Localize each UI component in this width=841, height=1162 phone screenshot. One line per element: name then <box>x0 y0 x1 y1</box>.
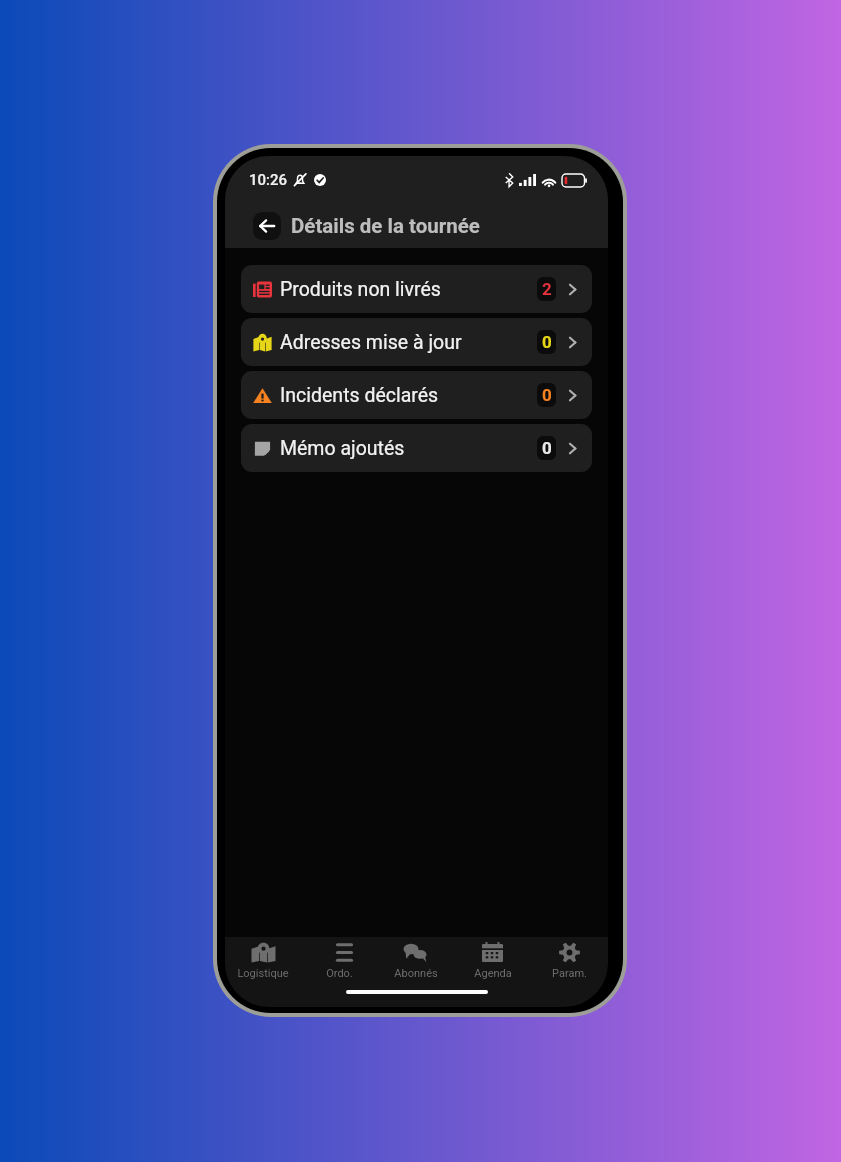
button[interactable]: Agenda <box>454 937 531 984</box>
staticText: 2 <box>542 279 552 299</box>
button[interactable]: Mémo ajoutés <box>241 424 592 472</box>
button[interactable]: Incidents déclarés <box>241 371 592 419</box>
staticText: Abonnés <box>394 967 438 980</box>
button[interactable]: Param. <box>531 937 608 984</box>
staticText: Adresses mise à jour <box>280 331 462 354</box>
staticText: Mémo ajoutés <box>280 437 405 460</box>
staticText: Param. <box>552 967 587 980</box>
staticText: Incidents déclarés <box>280 384 439 407</box>
button[interactable]: Adresses mise à jour <box>241 318 592 366</box>
button[interactable]: Abonnés <box>377 937 454 984</box>
staticText: Produits non livrés <box>280 278 441 301</box>
staticText: 0 <box>542 438 552 458</box>
staticText: 0 <box>542 332 552 352</box>
button[interactable]: Ordo. <box>301 937 377 984</box>
button[interactable]: Produits non livrés <box>241 265 592 313</box>
button[interactable]: Logistique <box>225 937 301 984</box>
button[interactable]: Retour <box>253 212 281 240</box>
staticText: Ordo. <box>326 967 353 980</box>
staticText: 10:26 <box>249 171 288 189</box>
staticText: Détails de la tournée <box>291 214 480 238</box>
staticText: Agenda <box>474 967 512 980</box>
staticText: 0 <box>542 385 552 405</box>
staticText: Logistique <box>237 967 289 980</box>
